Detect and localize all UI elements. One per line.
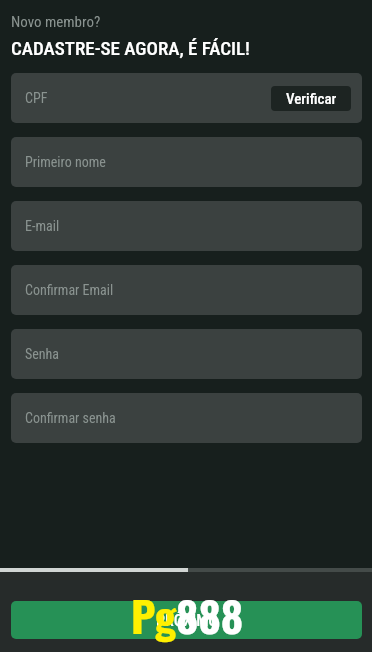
staticText: Verificar bbox=[286, 90, 337, 108]
button[interactable]: CPF bbox=[11, 73, 362, 123]
button[interactable]: Verificar bbox=[271, 86, 351, 111]
staticText: Confirmar Email bbox=[25, 282, 114, 298]
button[interactable]: Senha bbox=[11, 329, 362, 379]
button[interactable]: Confirmar Email bbox=[11, 265, 362, 315]
staticText: E-mail bbox=[25, 218, 60, 234]
staticText: CADASTRE-SE AGORA, É FÁCIL! bbox=[11, 37, 250, 59]
staticText: Confirmar senha bbox=[25, 410, 116, 426]
button[interactable]: E-mail bbox=[11, 201, 362, 251]
staticText: Pg bbox=[131, 583, 176, 647]
button[interactable]: Confirmar senha bbox=[11, 393, 362, 443]
button[interactable]: Primeiro nome bbox=[11, 137, 362, 187]
button[interactable]: PRÓXIMO bbox=[11, 601, 362, 639]
staticText: PRÓXIMO bbox=[156, 611, 218, 630]
staticText: Novo membro? bbox=[11, 13, 101, 31]
staticText: 888 bbox=[176, 583, 244, 647]
staticText: CPF bbox=[25, 90, 48, 106]
other: Pg888 watermark bbox=[131, 583, 244, 647]
staticText: Senha bbox=[25, 346, 60, 362]
staticText: Primeiro nome bbox=[25, 154, 106, 170]
